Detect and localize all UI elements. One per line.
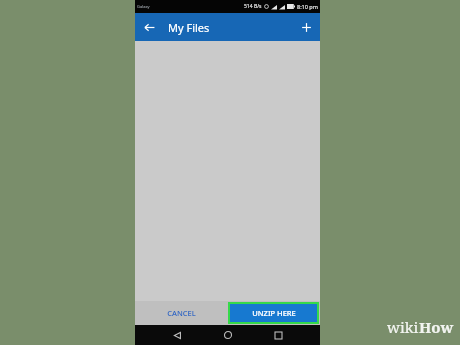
staticText: How — [419, 317, 454, 337]
staticText: 514 B/s — [244, 3, 262, 10]
staticText: 8:10 pm — [297, 3, 318, 10]
button[interactable]: Back — [139, 17, 159, 37]
button[interactable]: Add — [296, 17, 316, 37]
staticText: CANCEL — [167, 308, 196, 318]
staticText: UNZIP HERE — [252, 308, 296, 318]
button[interactable]: Back — [168, 326, 186, 344]
button[interactable]: Home — [219, 326, 237, 344]
button[interactable]: UNZIP HERE — [230, 304, 317, 322]
staticText: My Files — [168, 20, 210, 35]
staticText: wiki — [387, 317, 419, 337]
staticText: Galaxy — [137, 4, 150, 9]
button[interactable]: CANCEL — [135, 301, 227, 325]
button[interactable]: Recent apps — [269, 326, 287, 344]
